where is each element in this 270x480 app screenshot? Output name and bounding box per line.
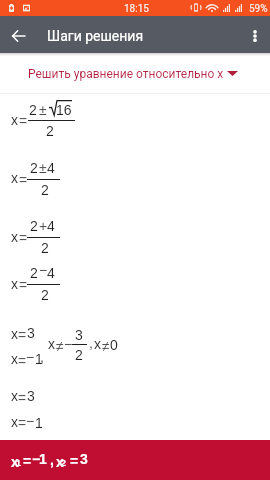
staticText: = <box>18 415 27 431</box>
staticText: ≠ <box>56 338 64 354</box>
staticText: 2 <box>61 458 67 468</box>
staticText: x <box>11 414 18 430</box>
staticText: − <box>32 451 41 467</box>
staticText: , <box>89 335 93 351</box>
staticText: = <box>19 113 28 129</box>
staticText: − <box>26 413 35 429</box>
staticText: 2 <box>46 123 54 139</box>
staticText: 1 <box>39 451 47 467</box>
staticText: x <box>11 351 18 367</box>
staticText: x <box>94 336 101 352</box>
staticText: 2 <box>75 347 83 363</box>
staticText: 2 <box>30 265 38 281</box>
staticText: = <box>19 230 28 246</box>
staticText: − <box>26 349 35 365</box>
staticText: x <box>56 454 64 470</box>
staticText: = <box>23 453 32 469</box>
staticText: 18:15 <box>124 3 149 15</box>
staticText: 2 <box>41 182 49 198</box>
staticText: 16 <box>56 102 72 118</box>
staticText: = <box>19 172 28 188</box>
staticText: = <box>19 277 28 293</box>
staticText: 4 <box>47 160 55 176</box>
staticText: x <box>11 326 18 342</box>
staticText: Шаги решения <box>47 28 144 44</box>
staticText: 3 <box>75 327 83 343</box>
staticText: ± <box>39 160 47 176</box>
staticText: = <box>70 453 79 469</box>
staticText: = <box>18 327 27 343</box>
staticText: 1 <box>35 415 43 431</box>
staticText: 3 <box>27 325 35 341</box>
staticText: x <box>48 336 55 352</box>
button[interactable]: Назад <box>0 16 37 53</box>
staticText: = <box>18 353 27 369</box>
staticText: x <box>11 112 18 128</box>
staticText: , <box>50 452 54 468</box>
button[interactable]: Решить уравнение относительно x <box>0 56 270 86</box>
staticText: x <box>11 170 18 186</box>
button[interactable]: Ещё <box>237 16 270 53</box>
staticText: ± <box>39 102 47 118</box>
staticText: , <box>40 349 44 365</box>
staticText: + <box>39 218 48 234</box>
staticText: 1 <box>16 458 22 468</box>
button[interactable]: x <box>0 440 270 480</box>
staticText: 2 <box>41 240 49 256</box>
staticText: 2 <box>30 218 38 234</box>
staticText: x <box>11 229 18 245</box>
staticText: Решить уравнение относительно x <box>28 67 224 81</box>
staticText: 4 <box>47 218 55 234</box>
staticText: − <box>39 262 48 278</box>
staticText: x <box>11 454 19 470</box>
staticText: 2 <box>30 160 38 176</box>
staticText: x <box>11 276 18 292</box>
staticText: 1 <box>35 351 43 367</box>
staticText: − <box>64 336 73 352</box>
staticText: 2 <box>29 102 37 118</box>
staticText: 3 <box>27 388 35 404</box>
staticText: 0 <box>110 337 118 353</box>
staticText: 4 <box>47 265 55 281</box>
staticText: 59% <box>249 3 268 15</box>
staticText: ≠ <box>102 338 110 354</box>
staticText: 2 <box>41 287 49 303</box>
staticText: 3 <box>80 451 88 467</box>
staticText: x <box>11 388 18 404</box>
staticText: = <box>18 390 27 406</box>
